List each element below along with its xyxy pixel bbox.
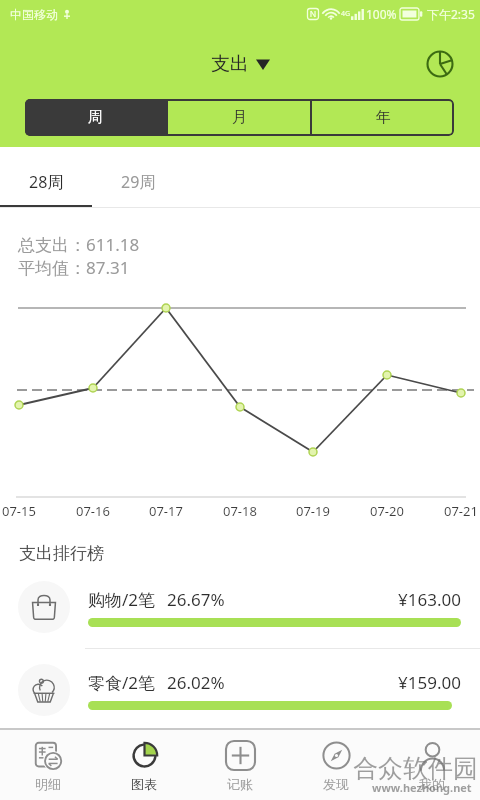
staticText: 下午2:35 [427,6,475,22]
staticText: 总支出：611.18 [18,233,140,256]
staticText: 购物/2笔 [88,588,156,611]
staticText: 07-16 [76,502,110,520]
staticText: 零食/2笔 [88,671,156,694]
button[interactable]: Pie chart report [418,42,462,86]
staticText: 我的 [419,776,445,792]
staticText: 26.02% [167,671,225,694]
staticText: 合众软件园 [353,753,478,784]
staticText: 支出 [211,52,249,76]
button[interactable]: 明细 [0,730,96,800]
button[interactable]: 28周 [0,147,92,208]
staticText: 07-17 [149,502,183,520]
staticText: 年 [376,108,391,127]
staticText: 支出排行榜 [19,543,104,564]
staticText: 发现 [323,776,349,792]
staticText: 明细 [35,776,61,792]
staticText: 中国移动 [10,7,58,22]
button[interactable]: 记账 [192,730,288,800]
button[interactable]: 我的 [384,730,480,800]
staticText: 周 [88,108,103,127]
staticText: 平均值：87.31 [18,256,130,279]
button[interactable]: 发现 [288,730,384,800]
staticText: 29周 [121,171,156,193]
button[interactable]: 周 [25,99,166,136]
staticText: www.hezhong.net [372,780,472,795]
button[interactable]: 零食/2笔 [0,649,480,731]
staticText: 图表 [131,776,157,792]
staticText: 07-19 [296,502,330,520]
staticText: 07-21 [444,502,478,520]
button[interactable]: 29周 [92,147,184,208]
staticText: 100% [366,6,397,22]
staticText: 4G [341,9,351,19]
staticText: 记账 [227,776,253,792]
button[interactable]: 月 [168,99,310,136]
button[interactable]: 购物/2笔 [0,566,480,648]
staticText: ¥159.00 [398,671,461,694]
staticText: 26.67% [167,588,225,611]
staticText: 07-18 [223,502,257,520]
staticText: ¥163.00 [398,588,461,611]
button[interactable]: 支出 [211,52,270,76]
button[interactable]: 年 [312,99,454,136]
staticText: 07-15 [2,502,36,520]
staticText: 月 [232,108,247,127]
staticText: 07-20 [370,502,404,520]
staticText: 28周 [29,171,64,193]
button[interactable]: 图表 [96,730,192,800]
